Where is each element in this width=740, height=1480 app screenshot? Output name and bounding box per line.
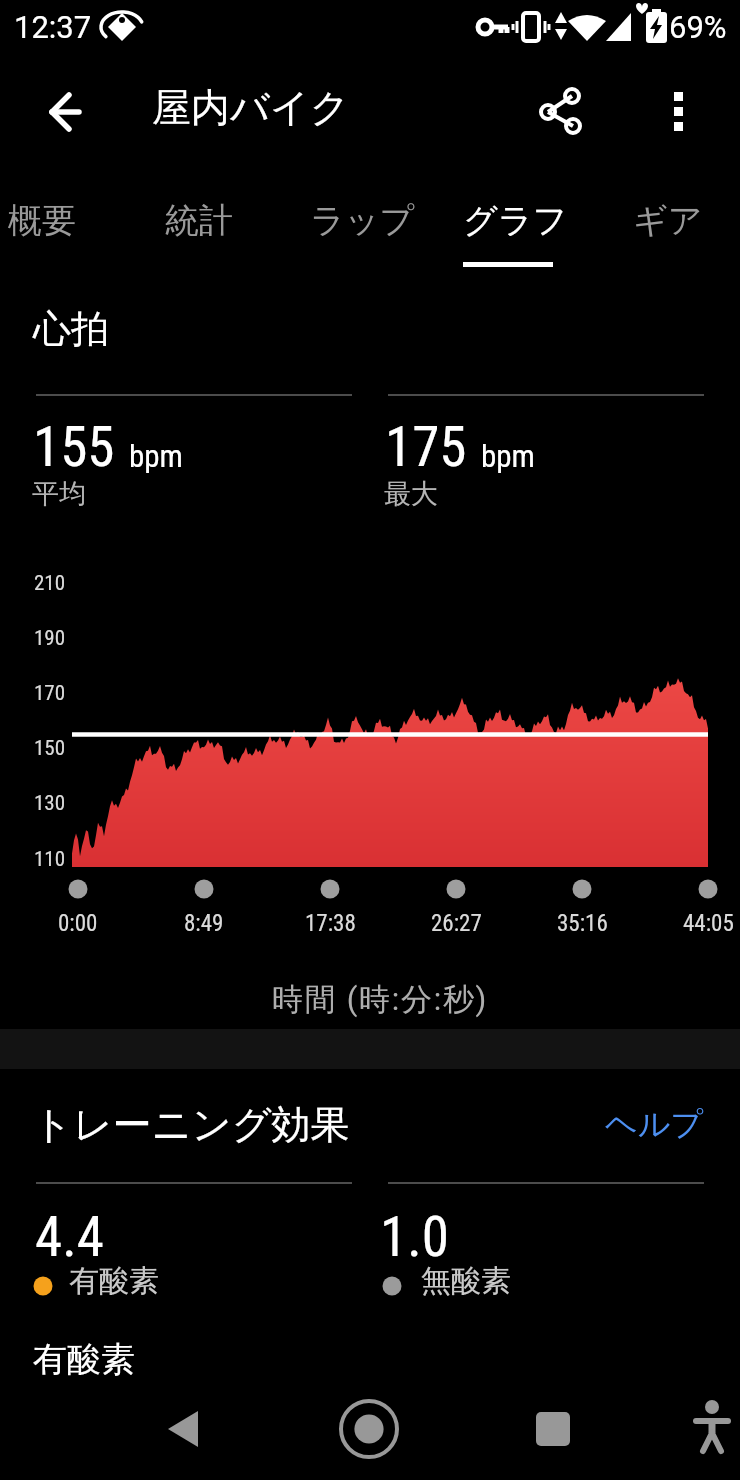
staticText: 0:00 xyxy=(58,910,98,937)
staticText: 170 xyxy=(34,681,66,706)
staticText: 210 xyxy=(34,571,66,596)
button[interactable]: ラップ xyxy=(310,199,415,242)
staticText: 69% xyxy=(669,9,727,45)
button[interactable] xyxy=(333,1385,405,1469)
staticText: 44:05 xyxy=(683,910,734,937)
staticText: bpm xyxy=(481,438,535,474)
staticText: 8:49 xyxy=(184,910,224,937)
staticText: 平均 xyxy=(32,477,86,511)
staticText: 無酸素 xyxy=(421,1262,511,1300)
button[interactable]: 統計 xyxy=(165,199,233,242)
staticText: 有酸素 xyxy=(69,1262,159,1300)
staticText: bpm xyxy=(129,438,183,474)
staticText: 統計 xyxy=(165,199,233,242)
button[interactable] xyxy=(676,1385,740,1469)
button[interactable] xyxy=(643,76,715,148)
staticText: ラップ xyxy=(310,199,415,242)
staticText: 130 xyxy=(34,791,66,816)
staticText: 有酸素 xyxy=(33,1338,135,1381)
staticText: 35:16 xyxy=(557,910,608,937)
staticText: 最大 xyxy=(384,477,438,511)
staticText: 1.0 xyxy=(380,1205,449,1269)
staticText: 12:37 xyxy=(14,9,92,45)
staticText: 17:38 xyxy=(305,910,356,937)
staticText: ヘルプ xyxy=(605,1104,704,1144)
button[interactable] xyxy=(517,1385,589,1469)
staticText: グラフ xyxy=(463,199,568,242)
button[interactable] xyxy=(29,76,101,148)
staticText: ギア xyxy=(633,199,703,242)
button[interactable] xyxy=(147,1385,219,1469)
staticText: 26:27 xyxy=(431,910,482,937)
staticText: 190 xyxy=(34,626,66,651)
staticText: 心拍 xyxy=(33,305,109,353)
staticText: 時間 (時:分:秒) xyxy=(272,980,489,1019)
staticText: 屋内バイク xyxy=(152,83,350,132)
staticText: 概要 xyxy=(8,199,76,242)
button[interactable]: ヘルプ xyxy=(605,1104,704,1144)
button[interactable] xyxy=(524,76,596,148)
staticText: 150 xyxy=(34,736,66,761)
staticText: トレーニング効果 xyxy=(33,1100,350,1149)
staticText: 155 xyxy=(33,415,115,479)
button[interactable]: ギア xyxy=(633,199,703,242)
staticText: 110 xyxy=(34,847,66,872)
staticText: 175 xyxy=(385,415,467,479)
button[interactable]: 概要 xyxy=(8,199,76,242)
button[interactable]: グラフ xyxy=(463,199,568,242)
staticText: 4.4 xyxy=(35,1205,104,1269)
